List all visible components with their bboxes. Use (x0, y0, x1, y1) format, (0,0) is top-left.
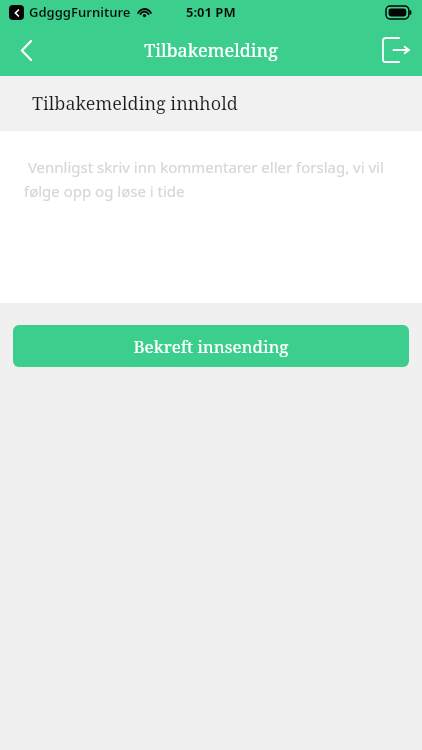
staticText: Tilbakemelding (144, 38, 278, 63)
staticText: GdgggFurniture (29, 3, 131, 21)
button[interactable]: Log out (370, 24, 422, 76)
staticText: Tilbakemelding innhold (32, 91, 238, 116)
button[interactable]: Bekreft innsending (13, 325, 409, 367)
staticText: Bekreft innsending (133, 335, 289, 358)
button[interactable]: Vennligst skriv inn kommentarer eller fo… (0, 131, 422, 303)
button[interactable]: Back (0, 24, 52, 76)
staticText: Vennligst skriv inn kommentarer eller fo… (24, 157, 400, 201)
staticText: 5:01 PM (186, 3, 236, 21)
